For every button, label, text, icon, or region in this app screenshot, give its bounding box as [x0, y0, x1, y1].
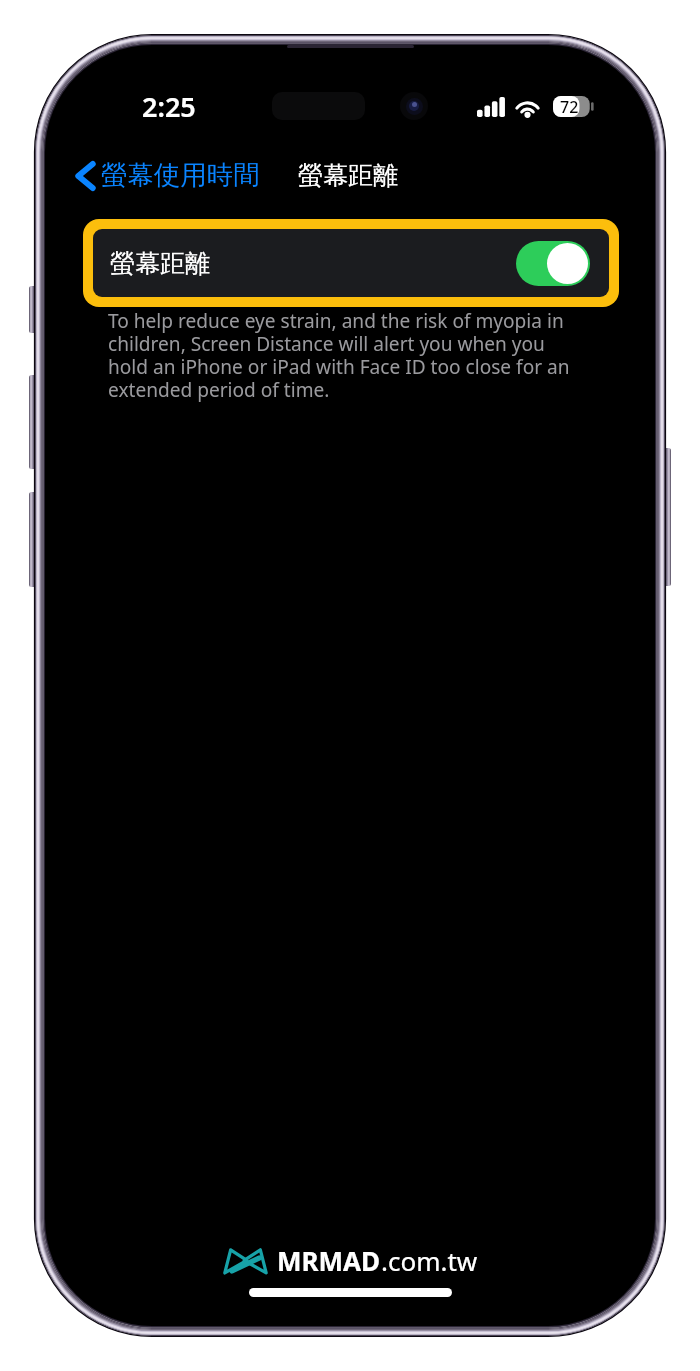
staticText: 螢幕距離 [298, 160, 398, 191]
button[interactable]: 螢幕距離 [93, 229, 609, 297]
staticText: 螢幕距離 [110, 248, 210, 279]
staticText: 72 [560, 96, 579, 117]
staticText: .com.tw [381, 1243, 478, 1278]
staticText: To help reduce eye strain, and the risk … [108, 308, 570, 403]
button[interactable]: Screen Distance toggle, on [516, 241, 590, 286]
staticText: 2:25 [142, 88, 196, 125]
button[interactable]: Back [76, 159, 260, 192]
other: Back [76, 161, 95, 191]
staticText: 螢幕使用時間 [101, 159, 260, 192]
staticText: MRMAD [277, 1243, 381, 1278]
